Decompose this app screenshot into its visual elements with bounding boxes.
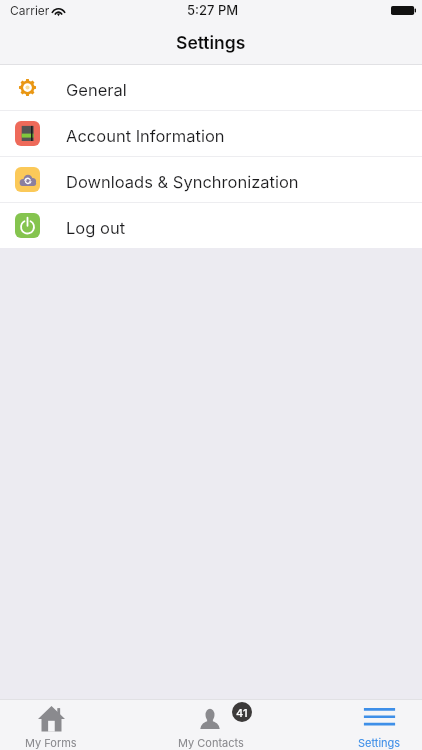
- button[interactable]: My Forms: [0, 700, 103, 750]
- button[interactable]: My Contacts: [159, 700, 263, 750]
- other: Settings: [366, 705, 393, 732]
- staticText: Account Information: [66, 126, 225, 146]
- button[interactable]: Downloads & Synchronization: [0, 157, 422, 202]
- button[interactable]: General: [0, 65, 422, 110]
- staticText: Log out: [66, 218, 126, 238]
- staticText: My Contacts: [178, 736, 244, 749]
- button[interactable]: Settings: [327, 700, 422, 750]
- staticText: My Forms: [25, 736, 77, 749]
- other: My Contacts: [200, 708, 220, 729]
- staticText: Carrier: [10, 3, 50, 18]
- staticText: 41: [236, 706, 248, 719]
- other: My Forms: [38, 705, 65, 732]
- staticText: General: [66, 80, 127, 100]
- button[interactable]: Account Information: [0, 111, 422, 156]
- staticText: Settings: [358, 736, 401, 749]
- staticText: 5:27 PM: [187, 2, 239, 18]
- staticText: Downloads & Synchronization: [66, 172, 299, 192]
- button[interactable]: Log out: [0, 203, 422, 248]
- staticText: Settings: [176, 32, 246, 53]
